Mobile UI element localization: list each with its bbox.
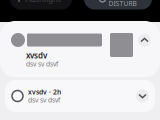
staticText: xvsdv: [26, 50, 47, 61]
staticText: DO NOT DISTURB: [108, 0, 136, 8]
staticText: dsv sv dsvf: [26, 60, 58, 68]
button[interactable]: Do Not Disturb: [84, 0, 152, 9]
staticText: xvsdv · 2h: [28, 88, 61, 96]
button[interactable]: xvsdv · 2h: [0, 80, 160, 112]
button[interactable]: Flashlight: [10, 0, 72, 9]
staticText: dsv sv dsvf: [28, 96, 60, 104]
button[interactable]: xvsdv: [0, 21, 160, 77]
staticText: Flashlight: [25, 0, 61, 4]
